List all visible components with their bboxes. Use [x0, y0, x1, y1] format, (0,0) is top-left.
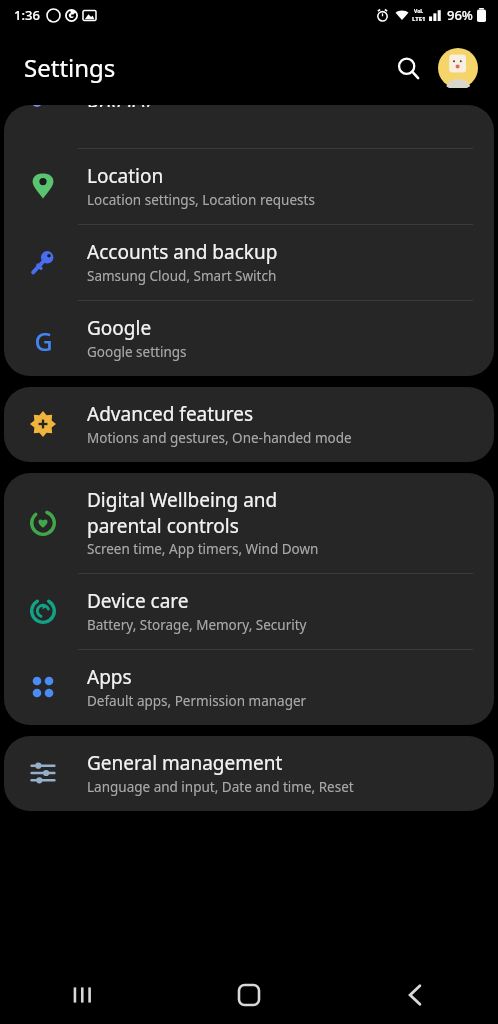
staticText: VoL — [414, 8, 424, 15]
button[interactable]: Recent apps — [0, 965, 166, 1024]
staticText: 1:36 — [14, 6, 40, 24]
button[interactable]: Home — [166, 965, 332, 1024]
button[interactable]: Back — [332, 965, 498, 1024]
staticText: 96% — [447, 6, 473, 24]
staticText: Advanced features — [87, 401, 254, 427]
staticText: Location — [87, 163, 164, 189]
button[interactable]: Accounts and backup — [4, 225, 494, 300]
staticText: Accounts and backup — [87, 239, 278, 265]
staticText: G — [34, 324, 53, 352]
staticText: Google — [87, 315, 152, 341]
staticText: Google settings — [87, 343, 187, 361]
staticText: Apps — [87, 664, 132, 690]
button[interactable]: Digital Wellbeing and parental controls — [4, 473, 494, 573]
staticText: LTE1 — [412, 15, 426, 23]
staticText: Screen time, App timers, Wind Down — [87, 540, 319, 558]
button[interactable]: General management — [4, 736, 494, 811]
button[interactable]: G — [4, 301, 494, 376]
button[interactable]: Account profile — [436, 46, 480, 90]
staticText: Location settings, Location requests — [87, 191, 315, 209]
staticText: Settings — [24, 51, 116, 84]
button[interactable]: Apps — [4, 650, 494, 725]
staticText: Battery, Storage, Memory, Security — [87, 616, 307, 634]
staticText: Default apps, Permission manager — [87, 692, 307, 710]
button[interactable]: Location — [4, 149, 494, 224]
staticText: General management — [87, 750, 283, 776]
staticText: Device care — [87, 588, 189, 614]
button[interactable]: Privacy — [4, 105, 494, 122]
staticText: Digital Wellbeing and parental controls — [87, 487, 332, 538]
button[interactable]: Device care — [4, 574, 494, 649]
staticText: Motions and gestures, One-handed mode — [87, 429, 352, 447]
staticText: Language and input, Date and time, Reset — [87, 778, 354, 796]
button[interactable]: Search — [386, 46, 430, 90]
staticText: Samsung Cloud, Smart Switch — [87, 267, 277, 285]
staticText: Privacy — [87, 105, 151, 107]
button[interactable]: Advanced features — [4, 387, 494, 462]
